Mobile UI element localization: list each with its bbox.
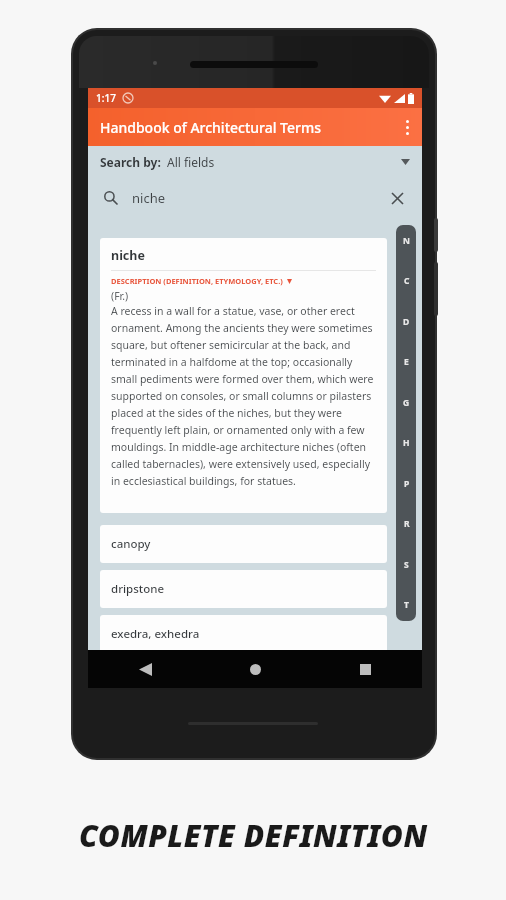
button[interactable]: More options (392, 108, 422, 146)
staticText: Search by: (100, 154, 161, 170)
staticText: D (403, 316, 410, 328)
staticText: niche (111, 247, 145, 264)
staticText: S (404, 559, 409, 571)
button[interactable]: Back (130, 654, 160, 684)
staticText: DESCRIPTION (DEFINITION, ETYMOLOGY, ETC.… (111, 276, 283, 286)
staticText: (Fr.) (111, 289, 129, 303)
staticText: N (403, 235, 410, 247)
staticText: H (403, 437, 410, 449)
button[interactable]: Clear search (386, 187, 408, 209)
staticText: E (404, 356, 409, 368)
staticText: niche (132, 189, 165, 207)
staticText: A recess in a wall for a statue, vase, o… (111, 304, 376, 488)
staticText: Handbook of Architectural Terms (100, 118, 322, 137)
button[interactable]: niche (100, 238, 387, 513)
staticText: C (404, 275, 410, 287)
button[interactable]: niche (88, 180, 422, 216)
staticText: G (403, 397, 410, 409)
button[interactable]: exedra, exhedra (100, 615, 387, 653)
staticText: All fields (167, 154, 215, 170)
button[interactable]: dripstone (100, 570, 387, 608)
staticText: R (404, 518, 410, 530)
button[interactable]: canopy (100, 525, 387, 563)
staticText: T (404, 599, 409, 611)
staticText: 1:17 (96, 91, 116, 105)
button[interactable]: Home (240, 654, 270, 684)
button[interactable]: Alphabet index (396, 225, 416, 621)
staticText: P (404, 478, 410, 490)
staticText: canopy (111, 536, 151, 552)
staticText: dripstone (111, 581, 165, 597)
staticText: exedra, exhedra (111, 626, 200, 642)
staticText: COMPLETE DEFINITION (79, 815, 428, 856)
button[interactable]: Search by: (88, 146, 422, 178)
button[interactable]: Recent apps (350, 654, 380, 684)
